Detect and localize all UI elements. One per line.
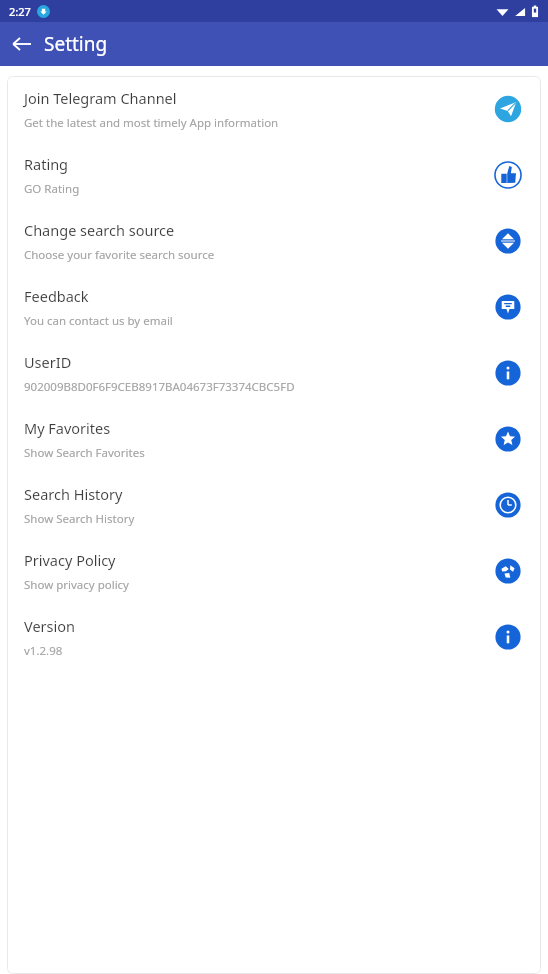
other: Search History	[493, 490, 523, 520]
button[interactable]: Search History	[7, 472, 541, 538]
staticText: Show privacy policy	[24, 577, 129, 593]
button[interactable]: Version	[7, 604, 541, 670]
other: Rating	[493, 160, 523, 190]
other: Privacy Policy	[493, 556, 523, 586]
staticText: Choose your favorite search source	[24, 247, 215, 263]
staticText: Rating	[24, 154, 69, 174]
button[interactable]: Privacy Policy	[7, 538, 541, 604]
staticText: Join Telegram Channel	[24, 88, 177, 108]
staticText: Change search source	[24, 220, 175, 240]
button[interactable]: Feedback	[7, 274, 541, 340]
staticText: v1.2.98	[24, 643, 63, 659]
staticText: Get the latest and most timely App infor…	[24, 115, 279, 131]
other: Version	[493, 622, 523, 652]
button[interactable]: Rating	[7, 142, 541, 208]
staticText: 902009B8D0F6F9CEB8917BA04673F73374CBC5FD	[24, 379, 295, 395]
button[interactable]: Change search source	[7, 208, 541, 274]
staticText: Setting	[44, 31, 108, 57]
staticText: UserID	[24, 352, 72, 372]
button[interactable]: Join Telegram Channel	[7, 76, 541, 142]
staticText: Privacy Policy	[24, 550, 116, 570]
other: Join Telegram Channel	[493, 94, 523, 124]
staticText: 2:27	[9, 4, 31, 19]
staticText: Search History	[24, 484, 123, 504]
staticText: My Favorites	[24, 418, 111, 438]
staticText: You can contact us by email	[24, 313, 173, 329]
staticText: Show Search Favorites	[24, 445, 145, 461]
other: My Favorites	[493, 424, 523, 454]
staticText: Feedback	[24, 286, 89, 306]
staticText: Version	[24, 616, 75, 636]
staticText: Show Search History	[24, 511, 135, 527]
other: Feedback	[493, 292, 523, 322]
other: Change search source	[493, 226, 523, 256]
other: UserID	[493, 358, 523, 388]
button[interactable]: My Favorites	[7, 406, 541, 472]
button[interactable]: Back	[0, 22, 44, 66]
button[interactable]: UserID	[7, 340, 541, 406]
staticText: GO Rating	[24, 181, 80, 197]
